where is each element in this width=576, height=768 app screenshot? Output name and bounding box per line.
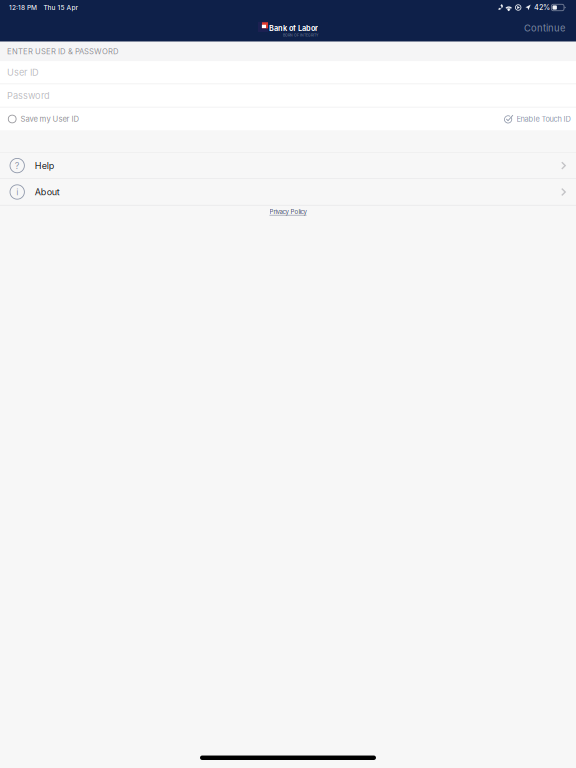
- staticText: Help: [35, 160, 55, 171]
- staticText: Thu 15 Apr: [43, 3, 78, 11]
- staticText: About: [35, 186, 60, 197]
- staticText: Enable Touch ID: [516, 114, 570, 123]
- staticText: i: [16, 186, 18, 197]
- button[interactable]: Save my User ID: [0, 114, 79, 124]
- button[interactable]: ?: [0, 153, 576, 178]
- staticText: BORN OF INTEGRITY: [283, 33, 318, 37]
- staticText: User ID: [7, 67, 39, 78]
- staticText: 42%: [534, 3, 550, 12]
- staticText: Save my User ID: [20, 114, 79, 124]
- staticText: 12:18 PM: [9, 3, 37, 11]
- button[interactable]: Continue: [513, 15, 576, 41]
- staticText: Bank of Labor: [269, 24, 318, 33]
- staticText: Privacy Policy: [269, 208, 306, 215]
- staticText: Continue: [524, 22, 565, 34]
- staticText: ENTER USER ID & PASSWORD: [7, 47, 119, 56]
- staticText: ?: [15, 160, 20, 171]
- button[interactable]: i: [0, 179, 576, 205]
- button[interactable]: Privacy Policy: [269, 205, 306, 218]
- staticText: Password: [7, 90, 50, 101]
- button[interactable]: Enable Touch ID: [504, 114, 576, 124]
